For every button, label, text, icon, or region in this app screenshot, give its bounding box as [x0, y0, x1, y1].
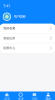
staticText: 浏览记录: [3, 36, 15, 40]
button[interactable]: 消息: [27, 93, 41, 100]
button[interactable]: 设置中心: [0, 43, 55, 53]
button[interactable]: 我的: [41, 93, 55, 100]
button[interactable]: 我的收藏: [0, 24, 55, 33]
staticText: 我的收藏: [3, 26, 15, 30]
staticText: 消息: [31, 97, 37, 100]
button[interactable]: 浏览记录: [0, 33, 55, 43]
staticText: 首页: [4, 97, 10, 100]
button[interactable]: 发现: [14, 93, 28, 100]
staticText: 用户昵称: [13, 14, 25, 19]
staticText: 我的: [45, 97, 51, 100]
staticText: 9:41: [3, 4, 10, 8]
button[interactable]: 首页: [0, 93, 14, 100]
staticText: 发现: [18, 97, 24, 100]
staticText: 设置中心: [3, 46, 15, 50]
